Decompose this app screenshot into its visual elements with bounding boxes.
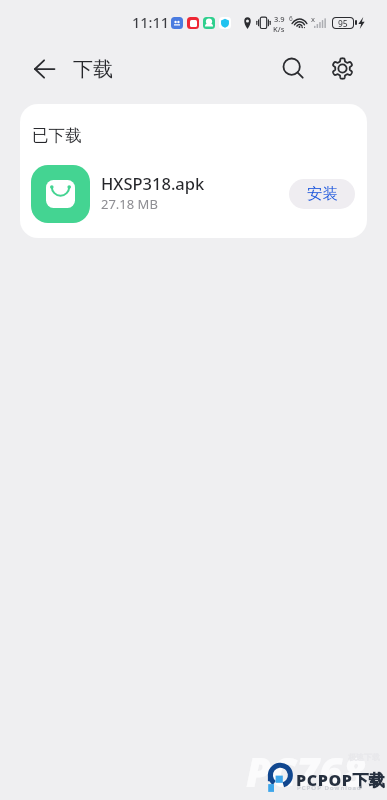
staticText: PCPOP下载 bbox=[296, 769, 386, 791]
staticText: PC768 bbox=[246, 744, 366, 798]
staticText: 95 bbox=[338, 18, 348, 28]
staticText: x bbox=[311, 14, 315, 24]
button[interactable]: Settings bbox=[320, 46, 364, 91]
staticText: K/s bbox=[273, 24, 285, 34]
staticText: 安装 bbox=[307, 184, 338, 204]
staticText: 下载 bbox=[73, 57, 113, 82]
staticText: 极速下载 bbox=[348, 752, 380, 762]
staticText: 27.18 MB bbox=[101, 195, 158, 213]
staticText: HXSP318.apk bbox=[101, 172, 205, 194]
staticText: 11:11 bbox=[132, 12, 170, 32]
staticText: 已下载 bbox=[32, 125, 82, 146]
button[interactable]: 安装 bbox=[289, 179, 355, 209]
button[interactable]: Search bbox=[271, 46, 315, 90]
staticText: 6 bbox=[289, 14, 293, 23]
staticText: PCPOP Download bbox=[297, 784, 362, 792]
staticText: 3.9 bbox=[274, 14, 285, 24]
button[interactable]: HXSP318.apk bbox=[20, 154, 367, 238]
button[interactable]: Back bbox=[25, 49, 65, 89]
